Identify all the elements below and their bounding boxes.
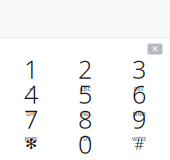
staticText: 6: [132, 77, 146, 111]
staticText: PQRS: [24, 135, 37, 142]
button[interactable]: 0: [62, 135, 108, 159]
staticText: 4: [24, 77, 38, 111]
staticText: #: [134, 134, 143, 154]
button[interactable]: 1: [8, 60, 54, 84]
staticText: WXYZ: [132, 135, 146, 142]
staticText: TUV: [80, 135, 90, 142]
button[interactable]: 7: [8, 110, 54, 134]
staticText: 5: [78, 77, 92, 111]
staticText: 7: [24, 102, 38, 136]
button[interactable]: Delete: [144, 41, 166, 57]
button[interactable]: 8: [62, 110, 108, 134]
staticText: 3: [132, 52, 146, 86]
staticText: ∞: [29, 86, 33, 92]
button[interactable]: 5: [62, 85, 108, 109]
staticText: 9: [132, 102, 146, 136]
staticText: GHI: [26, 110, 36, 117]
staticText: MNO: [132, 110, 145, 117]
button[interactable]: 4: [8, 85, 54, 109]
button[interactable]: 2: [62, 60, 108, 84]
button[interactable]: ✻: [8, 135, 54, 159]
staticText: ✕: [151, 44, 159, 54]
staticText: JKL: [81, 110, 89, 117]
staticText: 1: [24, 52, 38, 86]
staticText: 2: [78, 52, 92, 86]
button[interactable]: 6: [116, 85, 162, 109]
staticText: DEF: [134, 85, 144, 92]
staticText: ABC: [79, 85, 90, 92]
button[interactable]: #: [116, 135, 162, 159]
button[interactable]: 3: [116, 60, 162, 84]
button[interactable]: 9: [116, 110, 162, 134]
staticText: 8: [78, 102, 92, 136]
staticText: 0: [78, 127, 92, 160]
staticText: ✻: [25, 136, 37, 152]
